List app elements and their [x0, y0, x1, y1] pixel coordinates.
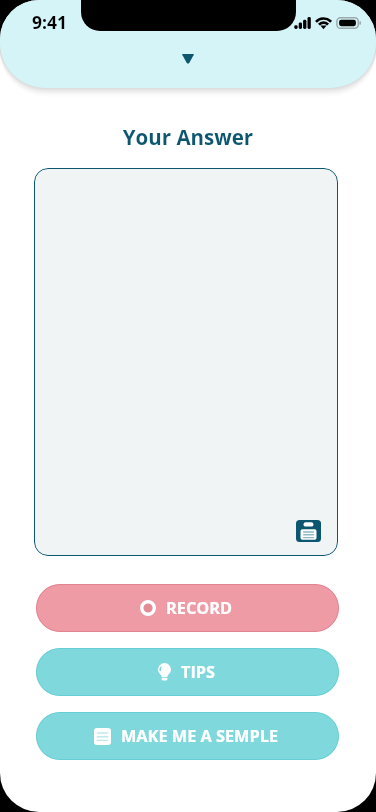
staticText: Your Answer — [0, 123, 376, 151]
button[interactable]: Save — [296, 520, 321, 542]
staticText: MAKE ME A SEMPLE — [121, 725, 279, 747]
button[interactable]: TIPS — [36, 648, 339, 696]
staticText: 9:41 — [32, 10, 68, 34]
staticText: RECORD — [166, 597, 233, 619]
staticText: TIPS — [181, 661, 216, 683]
button[interactable]: MAKE ME A SEMPLE — [36, 712, 339, 760]
button[interactable]: RECORD — [36, 584, 339, 632]
button[interactable]: Save — [34, 168, 338, 556]
button[interactable]: Collapse panel — [170, 45, 206, 71]
